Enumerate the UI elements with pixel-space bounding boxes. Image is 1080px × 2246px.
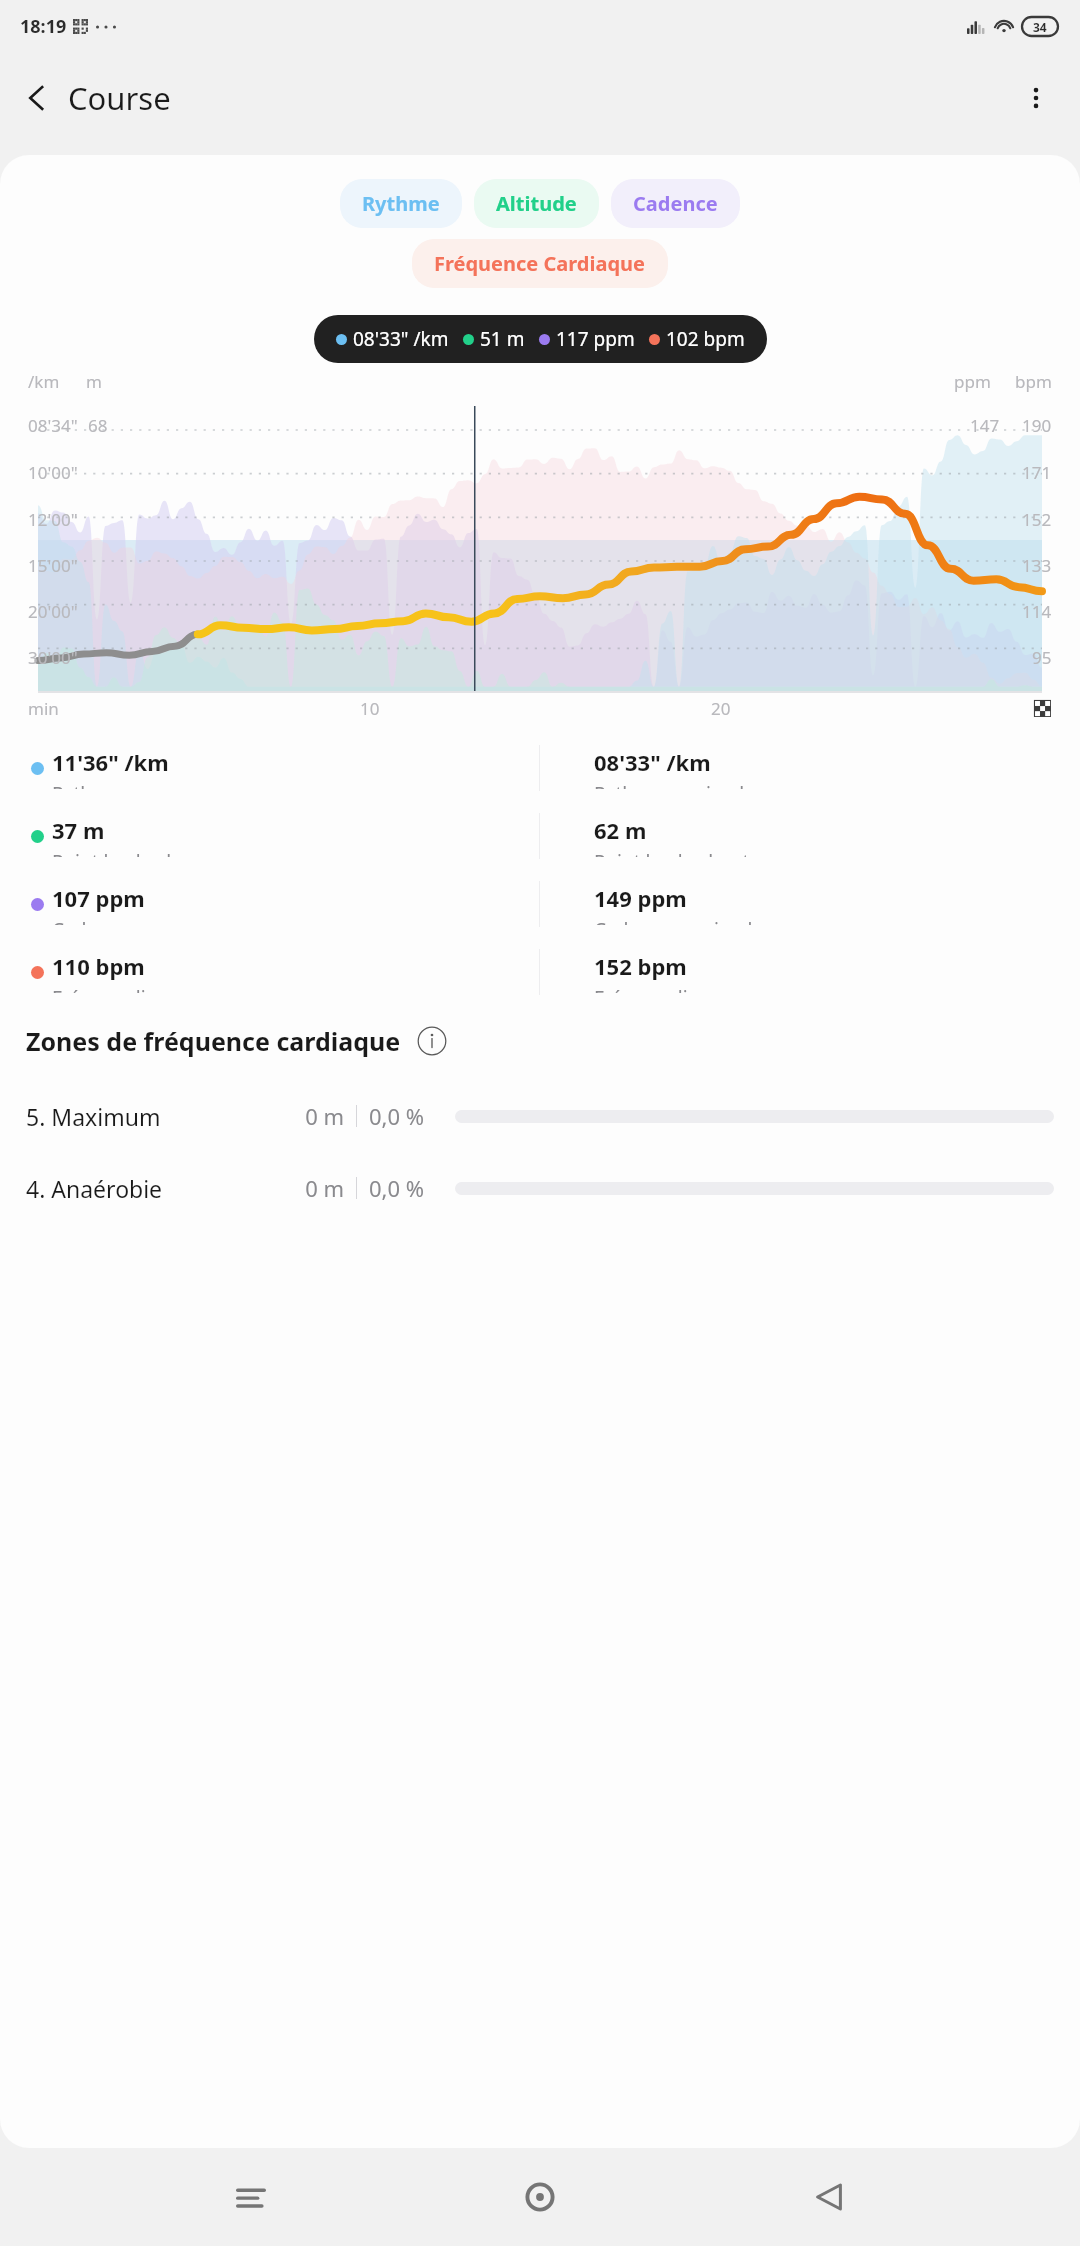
staticText: m	[86, 370, 102, 393]
button[interactable]: Back	[14, 68, 60, 128]
staticText: ppm	[954, 370, 991, 393]
button[interactable]: Rythme	[340, 179, 462, 228]
staticText: Fréquence Cardiaque	[434, 250, 646, 277]
staticText: Point le plus bas	[52, 849, 198, 857]
staticText: Cadence	[633, 190, 718, 217]
staticText: 147	[970, 414, 1000, 437]
staticText: 0 m	[276, 1173, 344, 1203]
staticText: 110 bpm	[52, 951, 145, 981]
staticText: Zones de fréquence cardiaque	[26, 1024, 401, 1058]
staticText: 0,0 %	[369, 1101, 445, 1131]
button[interactable]: 08'33" /km	[564, 734, 1058, 802]
staticText: /km	[28, 370, 60, 393]
staticText: 0 m	[276, 1101, 344, 1131]
staticText: Altitude	[496, 190, 577, 217]
staticText: 95	[1032, 646, 1052, 669]
staticText: Fréq. cardio moy.	[52, 985, 205, 993]
staticText: 34	[1033, 19, 1047, 35]
staticText: 37 m	[52, 815, 105, 845]
staticText: 10	[360, 697, 380, 720]
staticText: 171	[1022, 461, 1052, 484]
staticText: 10'00"	[28, 461, 78, 484]
staticText: 18:19	[20, 14, 67, 39]
button[interactable]: 152 bpm	[564, 938, 1058, 1006]
staticText: 15'00"	[28, 554, 78, 577]
button[interactable]: 11'36" /km	[22, 734, 539, 802]
button[interactable]: 4. Anaérobie	[26, 1152, 1054, 1224]
staticText: 62 m	[594, 815, 647, 845]
button[interactable]: 62 m	[564, 802, 1058, 870]
button[interactable]: 149 ppm	[564, 870, 1058, 938]
staticText: 102 bpm	[666, 326, 745, 352]
staticText: 08'33" /km	[594, 747, 711, 777]
staticText: Cadence maximale	[594, 917, 764, 925]
button[interactable]: Altitude	[474, 179, 599, 228]
staticText: Rythme	[362, 190, 440, 217]
staticText: Rythme maximal	[594, 781, 745, 789]
staticText: Point le plus haut	[594, 849, 750, 857]
staticText: Rythme moyen	[52, 781, 187, 789]
button[interactable]: Back	[791, 2159, 867, 2235]
button[interactable]: 110 bpm	[22, 938, 539, 1006]
staticText: 68	[88, 414, 108, 437]
staticText: 20'00"	[28, 600, 78, 623]
staticText: 114	[1022, 600, 1052, 623]
staticText: 117 ppm	[556, 326, 635, 352]
staticText: 133	[1022, 554, 1052, 577]
staticText: Cadence moyenne	[52, 917, 218, 925]
button[interactable]: 107 ppm	[22, 870, 539, 938]
staticText: 08'33" /km	[353, 326, 449, 352]
staticText: Course	[68, 77, 171, 119]
staticText: 152 bpm	[594, 951, 687, 981]
button[interactable]: Recent apps	[213, 2159, 289, 2235]
staticText: bpm	[1015, 370, 1052, 393]
staticText: Fréq. cardio max	[594, 985, 743, 993]
button[interactable]: More options	[1008, 70, 1064, 126]
staticText: 5. Maximum	[26, 1101, 276, 1132]
staticText: 149 ppm	[594, 883, 687, 913]
staticText: 107 ppm	[52, 883, 145, 913]
button[interactable]: Cadence	[611, 179, 740, 228]
staticText: 190	[1022, 414, 1052, 437]
staticText: 20	[711, 697, 731, 720]
button[interactable]: Home	[502, 2159, 578, 2235]
staticText: min	[28, 697, 59, 720]
staticText: 11'36" /km	[52, 747, 169, 777]
staticText: 4. Anaérobie	[26, 1173, 276, 1204]
button[interactable]: Fréquence Cardiaque	[412, 239, 668, 288]
staticText: 152	[1022, 508, 1052, 531]
button[interactable]: 37 m	[22, 802, 539, 870]
staticText: 12'00"	[28, 508, 78, 531]
button[interactable]: Info	[415, 1024, 449, 1058]
staticText: 0,0 %	[369, 1173, 445, 1203]
staticText: 51 m	[480, 326, 525, 352]
staticText: 30'00"	[28, 646, 78, 669]
button[interactable]: 5. Maximum	[26, 1080, 1054, 1152]
staticText: 08'34"	[28, 414, 78, 437]
